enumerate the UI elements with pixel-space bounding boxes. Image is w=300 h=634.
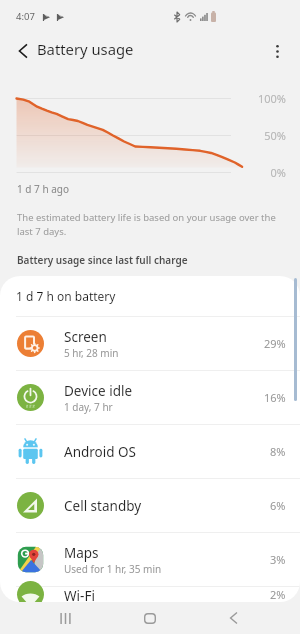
staticText: 8% [270, 444, 286, 459]
staticText: Wi-Fi [64, 587, 95, 602]
staticText: Device idle [64, 382, 133, 400]
staticText: 4:07 [16, 10, 35, 23]
staticText: Cell standby [64, 497, 142, 515]
staticText: Screen [64, 328, 107, 346]
button[interactable]: Back [5, 33, 41, 69]
button[interactable]: Recents [42, 602, 88, 634]
button[interactable]: Wi-Fi [0, 587, 300, 602]
staticText: Battery usage [37, 39, 134, 59]
staticText: 6% [270, 498, 286, 513]
staticText: 29% [264, 336, 286, 351]
staticText: 3% [270, 552, 286, 567]
button[interactable]: More options [259, 33, 295, 69]
staticText: 16% [264, 390, 286, 405]
button[interactable]: Device idle [0, 371, 300, 424]
button[interactable]: Android OS [0, 425, 300, 478]
staticText: 1 day, 7 hr [64, 400, 113, 414]
button[interactable]: Screen [0, 317, 300, 370]
staticText: 2% [270, 587, 286, 602]
staticText: 50% [246, 128, 286, 143]
staticText: 5 hr, 28 min [64, 346, 119, 360]
button[interactable]: Back [210, 602, 256, 634]
staticText: 0% [246, 165, 286, 180]
staticText: The estimated battery life is based on y… [17, 211, 276, 237]
button[interactable]: Home [127, 602, 173, 634]
staticText: Used for 1 hr, 35 min [64, 562, 162, 576]
staticText: Maps [64, 544, 99, 562]
staticText: 1 d 7 h ago [17, 182, 69, 196]
staticText: 1 d 7 h on battery [16, 288, 116, 304]
staticText: Battery usage since last full charge [17, 253, 188, 267]
staticText: Android OS [64, 443, 136, 461]
button[interactable]: Maps [0, 533, 300, 586]
staticText: 100% [246, 91, 286, 106]
button[interactable]: Cell standby [0, 479, 300, 532]
